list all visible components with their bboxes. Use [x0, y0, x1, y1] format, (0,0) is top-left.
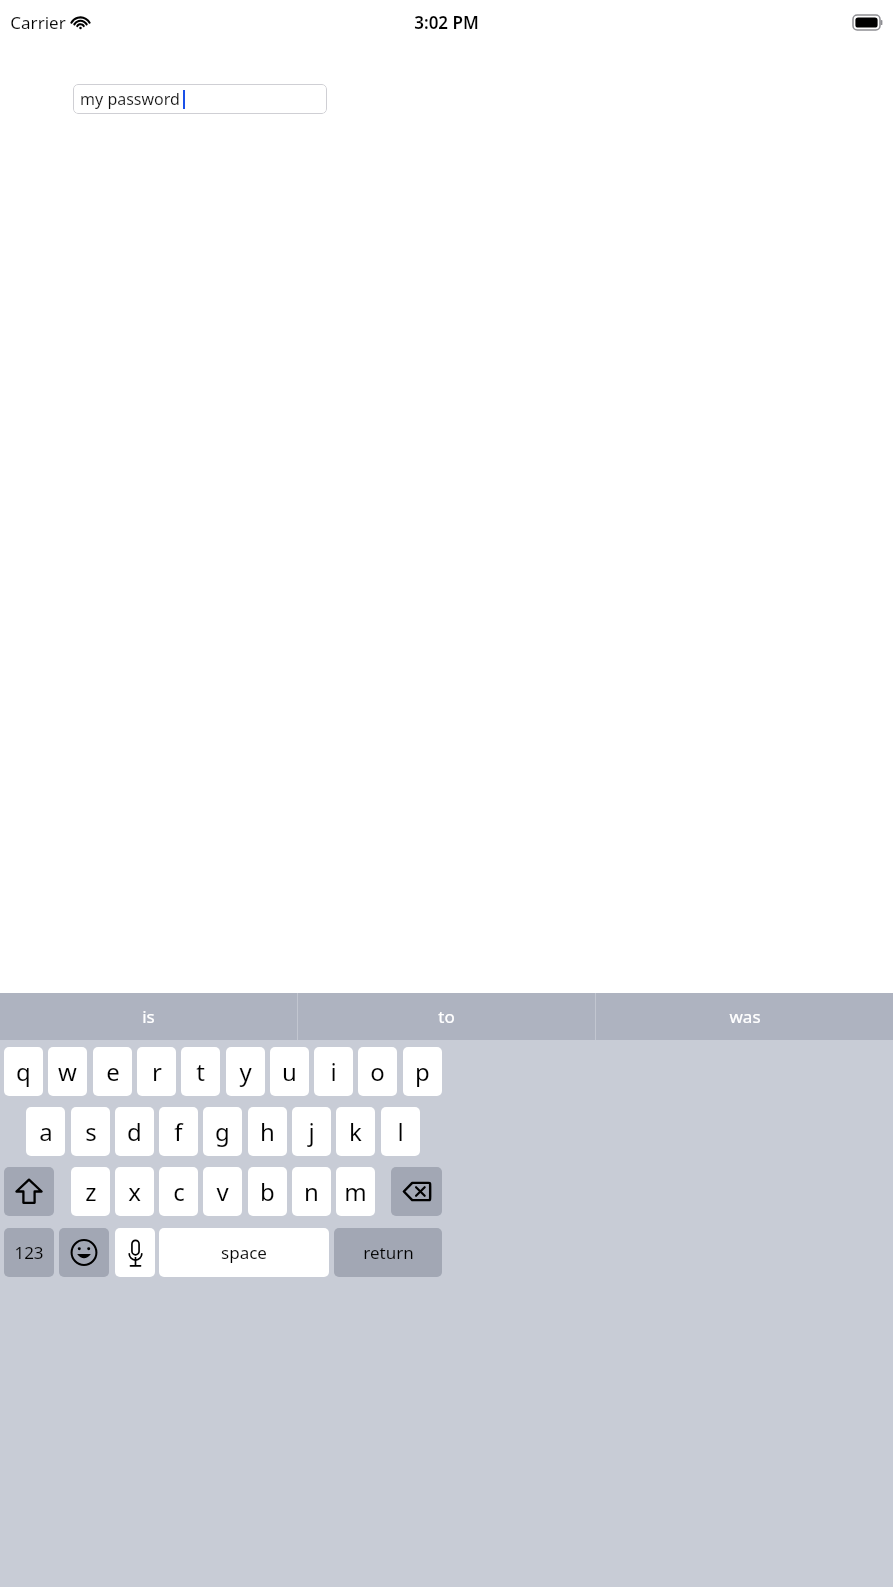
button[interactable]: u	[270, 1047, 309, 1096]
staticText: n	[304, 1175, 319, 1208]
button[interactable]: return	[334, 1228, 442, 1277]
staticText: m	[344, 1175, 367, 1208]
staticText: y	[239, 1055, 252, 1088]
button[interactable]: p	[403, 1047, 442, 1096]
staticText: x	[128, 1175, 141, 1208]
staticText: a	[39, 1115, 53, 1148]
button[interactable]: x	[115, 1167, 154, 1216]
button[interactable]: i	[314, 1047, 353, 1096]
staticText: f	[174, 1115, 183, 1148]
button[interactable]: g	[203, 1107, 242, 1156]
button[interactable]: c	[159, 1167, 198, 1216]
staticText: space	[221, 1241, 267, 1264]
staticText: was	[729, 1005, 761, 1028]
button[interactable]: 123	[4, 1228, 54, 1277]
button[interactable]: n	[292, 1167, 331, 1216]
button[interactable]: was	[596, 993, 893, 1040]
staticText: 3:02 PM	[414, 11, 479, 34]
button[interactable]: j	[292, 1107, 331, 1156]
staticText: w	[58, 1055, 77, 1088]
staticText: b	[260, 1175, 275, 1208]
staticText: to	[438, 1005, 455, 1028]
staticText: c	[173, 1175, 185, 1208]
staticText: my password	[80, 88, 180, 110]
button[interactable]: o	[358, 1047, 397, 1096]
button[interactable]: a	[26, 1107, 65, 1156]
button[interactable]: y	[226, 1047, 265, 1096]
button[interactable]: b	[248, 1167, 287, 1216]
button[interactable]: my password	[73, 84, 327, 114]
staticText: p	[415, 1055, 430, 1088]
button[interactable]: z	[71, 1167, 110, 1216]
staticText: t	[196, 1055, 205, 1088]
button[interactable]: d	[115, 1107, 154, 1156]
staticText: d	[127, 1115, 142, 1148]
button[interactable]: l	[381, 1107, 420, 1156]
button[interactable]: e	[93, 1047, 132, 1096]
button[interactable]: h	[248, 1107, 287, 1156]
staticText: z	[85, 1175, 97, 1208]
staticText: g	[215, 1115, 230, 1148]
staticText: return	[363, 1241, 414, 1264]
button[interactable]: r	[137, 1047, 176, 1096]
staticText: Carrier	[10, 11, 66, 34]
button[interactable]: space	[159, 1228, 329, 1277]
staticText: k	[349, 1115, 362, 1148]
staticText: s	[85, 1115, 97, 1148]
button[interactable]: Dictation	[115, 1228, 155, 1277]
staticText: l	[397, 1115, 404, 1148]
button[interactable]: Emoji	[59, 1228, 109, 1277]
button[interactable]: Shift	[4, 1167, 54, 1216]
button[interactable]: k	[336, 1107, 375, 1156]
staticText: h	[260, 1115, 275, 1148]
button[interactable]: s	[71, 1107, 110, 1156]
staticText: j	[308, 1115, 315, 1148]
staticText: i	[330, 1055, 337, 1088]
staticText: is	[142, 1005, 155, 1028]
button[interactable]: to	[298, 993, 595, 1040]
staticText: 123	[14, 1241, 44, 1264]
button[interactable]: is	[0, 993, 297, 1040]
button[interactable]: f	[159, 1107, 198, 1156]
staticText: o	[370, 1055, 385, 1088]
button[interactable]: w	[48, 1047, 87, 1096]
button[interactable]: t	[181, 1047, 220, 1096]
button[interactable]: q	[4, 1047, 43, 1096]
staticText: u	[282, 1055, 297, 1088]
staticText: v	[216, 1175, 229, 1208]
staticText: q	[16, 1055, 31, 1088]
staticText: e	[106, 1055, 120, 1088]
button[interactable]: Backspace	[391, 1167, 442, 1216]
button[interactable]: m	[336, 1167, 375, 1216]
button[interactable]: v	[203, 1167, 242, 1216]
staticText: r	[152, 1055, 162, 1088]
